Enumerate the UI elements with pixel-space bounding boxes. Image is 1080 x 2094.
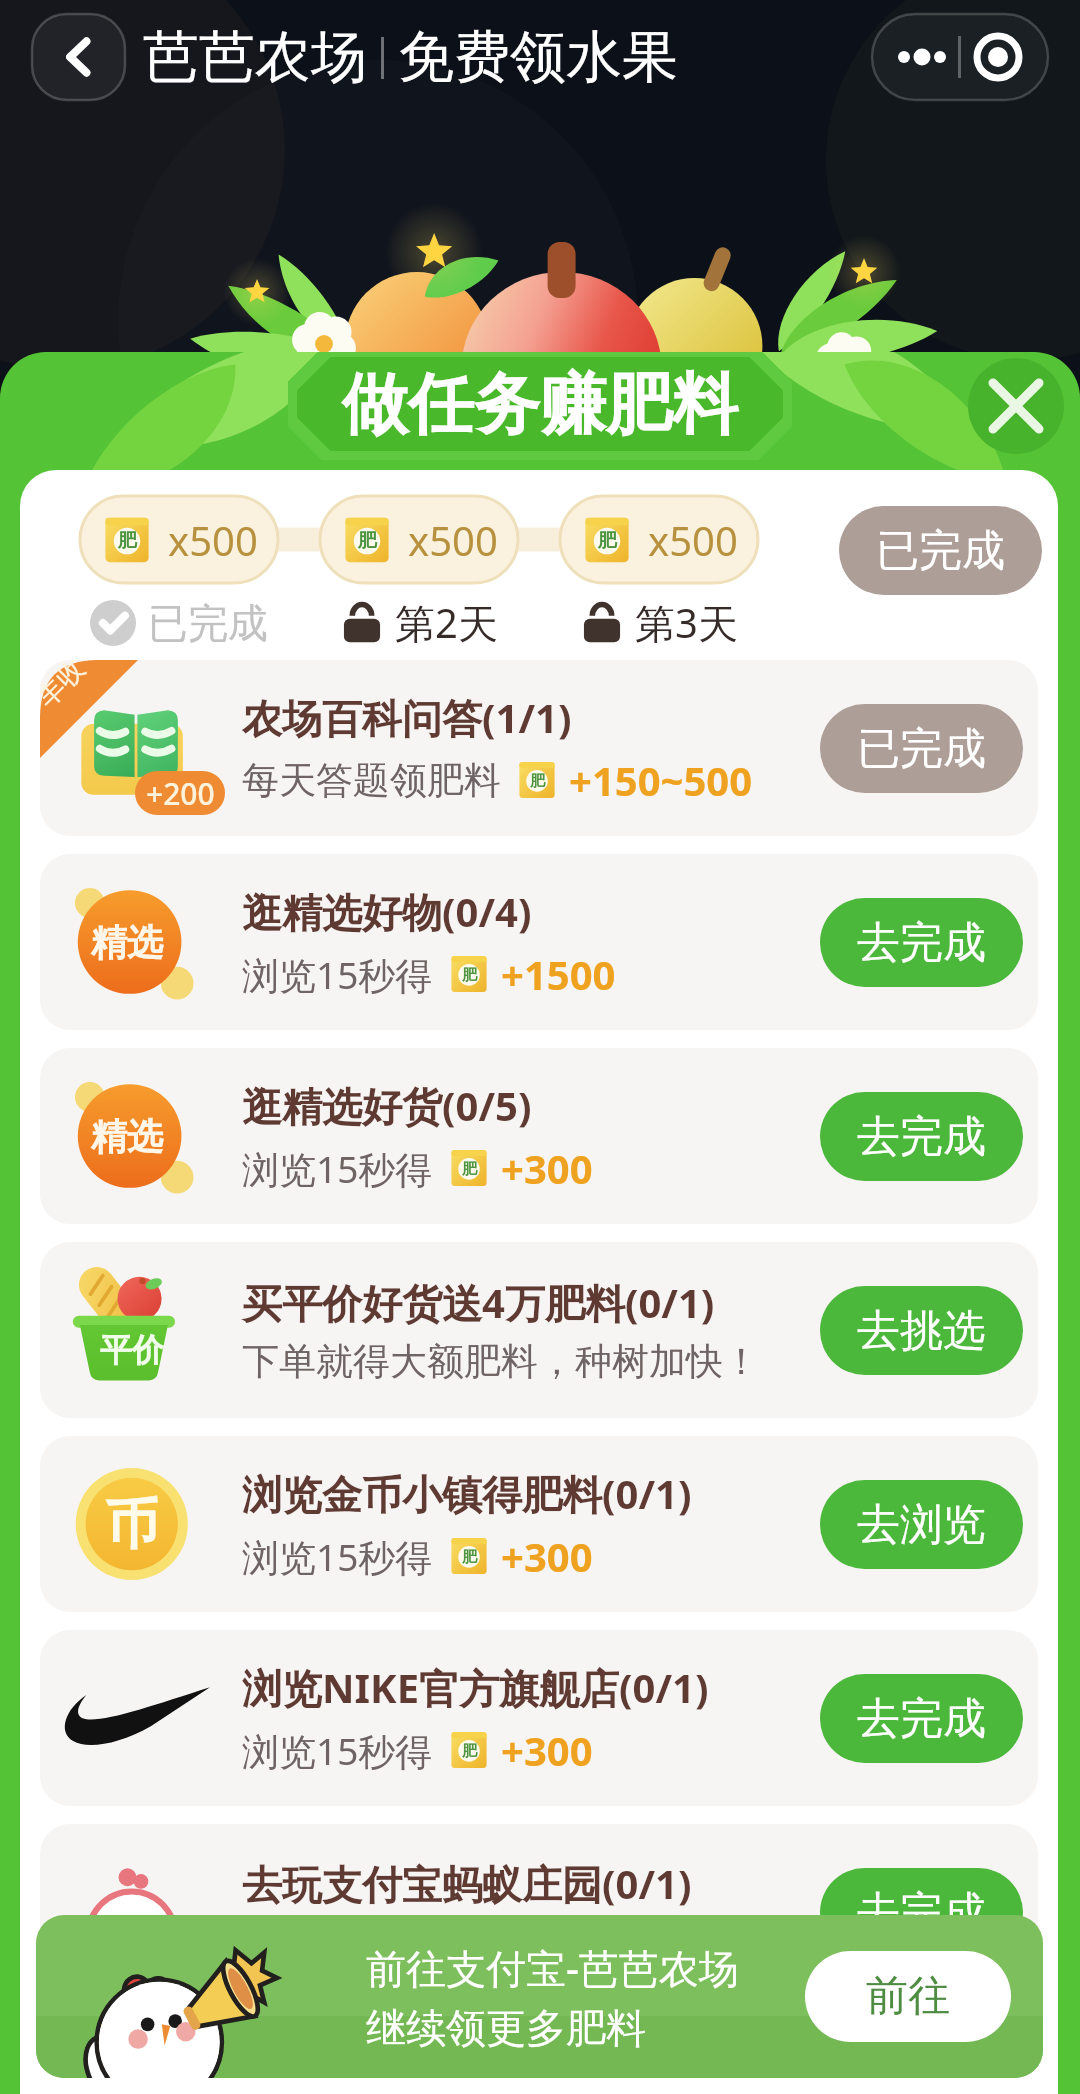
button[interactable]: 精选 bbox=[40, 854, 1038, 1030]
staticText: 芭芭农场 bbox=[143, 22, 367, 93]
staticText: x500 bbox=[168, 513, 258, 567]
staticText: 每天答题领肥料 bbox=[242, 757, 501, 804]
staticText: 已完成 bbox=[876, 524, 1005, 578]
staticText: 去完成 bbox=[857, 1692, 986, 1746]
staticText: 去浏览 bbox=[857, 1498, 986, 1552]
staticText: 去玩支付宝蚂蚁庄园(0/1) bbox=[242, 1856, 692, 1911]
staticText: 逛精选好货(0/5) bbox=[242, 1078, 532, 1133]
staticText: 去挑选 bbox=[857, 1304, 986, 1358]
staticText: +300 bbox=[501, 1723, 593, 1777]
staticText: 免费领水果 bbox=[398, 22, 678, 93]
staticText: 第2天 bbox=[395, 595, 498, 650]
staticText: +200 bbox=[146, 773, 215, 814]
button[interactable]: 已完成 bbox=[820, 704, 1023, 793]
button[interactable]: 浏览NIKE官方旗舰店(0/1) bbox=[40, 1630, 1038, 1806]
staticText: 前往 bbox=[866, 1970, 950, 2023]
button[interactable]: 前往 bbox=[805, 1951, 1011, 2042]
button[interactable]: 去玩支付宝蚂蚁庄园(0/1) bbox=[40, 1824, 1038, 2000]
button[interactable]: 去完成 bbox=[820, 898, 1023, 987]
staticText: 浏览金币小镇得肥料(0/1) bbox=[242, 1466, 692, 1521]
button[interactable]: 币 bbox=[40, 1436, 1038, 1612]
staticText: +300 bbox=[501, 1141, 593, 1195]
button[interactable]: +200 bbox=[40, 660, 1038, 836]
staticText: x500 bbox=[648, 513, 738, 567]
staticText: 精选 bbox=[91, 1114, 163, 1159]
staticText: 前往支付宝-芭芭农场 bbox=[366, 1940, 739, 1995]
button[interactable]: More options bbox=[872, 14, 1048, 100]
staticText: 精选 bbox=[91, 920, 163, 965]
button[interactable]: 去完成 bbox=[820, 1674, 1023, 1763]
button[interactable]: 精选 bbox=[40, 1048, 1038, 1224]
staticText: 币 bbox=[105, 1491, 159, 1559]
button[interactable]: 去浏览 bbox=[820, 1480, 1023, 1569]
button[interactable]: 前往支付宝-芭芭农场 bbox=[36, 1915, 1043, 2078]
staticText: 浏览NIKE官方旗舰店(0/1) bbox=[242, 1660, 709, 1715]
staticText: 肥 bbox=[462, 1742, 477, 1761]
staticText: 去完成 bbox=[857, 916, 986, 970]
staticText: 浏览15秒得 bbox=[242, 1531, 433, 1582]
staticText: 浏览15秒得 bbox=[242, 949, 433, 1000]
staticText: x500 bbox=[408, 513, 498, 567]
button[interactable]: 去完成 bbox=[820, 1868, 1023, 1957]
staticText: 做任务赚肥料 bbox=[342, 363, 738, 446]
staticText: 农场百科问答(1/1) bbox=[242, 690, 572, 745]
button[interactable]: 去完成 bbox=[820, 1092, 1023, 1181]
staticText: +1500 bbox=[501, 947, 616, 1001]
staticText: 肥 bbox=[462, 1548, 477, 1567]
staticText: 浏览15秒得 bbox=[242, 1143, 433, 1194]
staticText: +300 bbox=[501, 1529, 593, 1583]
staticText: 逛精选好物(0/4) bbox=[242, 884, 532, 939]
button[interactable]: Back bbox=[32, 14, 125, 100]
staticText: 已完成 bbox=[148, 598, 268, 648]
staticText: 肥 bbox=[598, 529, 617, 553]
staticText: 平价 bbox=[100, 1330, 164, 1370]
button[interactable]: Close bbox=[968, 358, 1064, 454]
button[interactable]: 平价 bbox=[40, 1242, 1038, 1418]
staticText: 去完成 bbox=[857, 1110, 986, 1164]
staticText: 肥 bbox=[462, 1160, 477, 1179]
staticText: 下单就得大额肥料，种树加快！ bbox=[242, 1338, 760, 1385]
staticText: 肥 bbox=[118, 529, 137, 553]
staticText: 肥 bbox=[530, 772, 545, 791]
button[interactable]: 已完成 bbox=[839, 506, 1042, 595]
staticText: 买平价好货送4万肥料(0/1) bbox=[242, 1275, 715, 1330]
staticText: 去完成 bbox=[857, 1886, 986, 1940]
staticText: 已完成 bbox=[857, 722, 986, 776]
staticText: 丰收 bbox=[40, 660, 92, 714]
staticText: 肥 bbox=[462, 966, 477, 985]
staticText: 肥 bbox=[358, 529, 377, 553]
staticText: 继续领更多肥料 bbox=[366, 2003, 646, 2053]
button[interactable]: 去挑选 bbox=[820, 1286, 1023, 1375]
staticText: 浏览15秒得 bbox=[242, 1725, 433, 1776]
staticText: 第3天 bbox=[635, 595, 738, 650]
staticText: +150~500 bbox=[569, 753, 753, 807]
